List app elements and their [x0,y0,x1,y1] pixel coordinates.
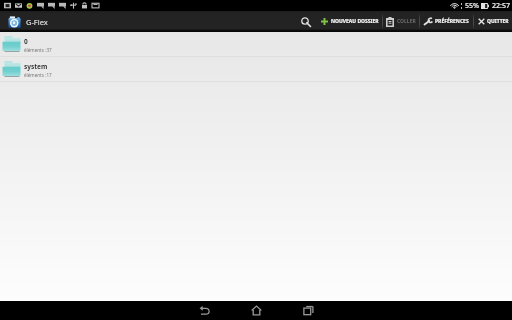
staticText: QUITTER [487,18,509,25]
button[interactable]: system [0,57,512,82]
staticText: NOUVEAU DOSSIER [331,18,379,25]
staticText: 55% [465,1,479,11]
button[interactable]: 0 [0,32,512,57]
button[interactable]: Accueil [230,301,282,320]
staticText: 22:57 [492,1,510,11]
staticText: system [24,62,48,71]
button[interactable]: PRÉFÉRENCES [420,11,473,32]
staticText: éléments :37 [24,47,52,53]
button[interactable]: Rechercher [294,11,318,32]
button[interactable]: Retour [178,301,230,320]
button[interactable]: QUITTER [474,11,512,32]
staticText: 0 [24,37,28,46]
button[interactable]: NOUVEAU DOSSIER [318,11,382,32]
staticText: PRÉFÉRENCES [435,18,469,25]
button[interactable]: Applications récentes [282,301,334,320]
staticText: éléments :17 [24,72,52,78]
staticText: G-Flex [26,17,48,27]
staticText: COLLER [397,18,416,25]
button[interactable]: COLLER [383,11,419,32]
